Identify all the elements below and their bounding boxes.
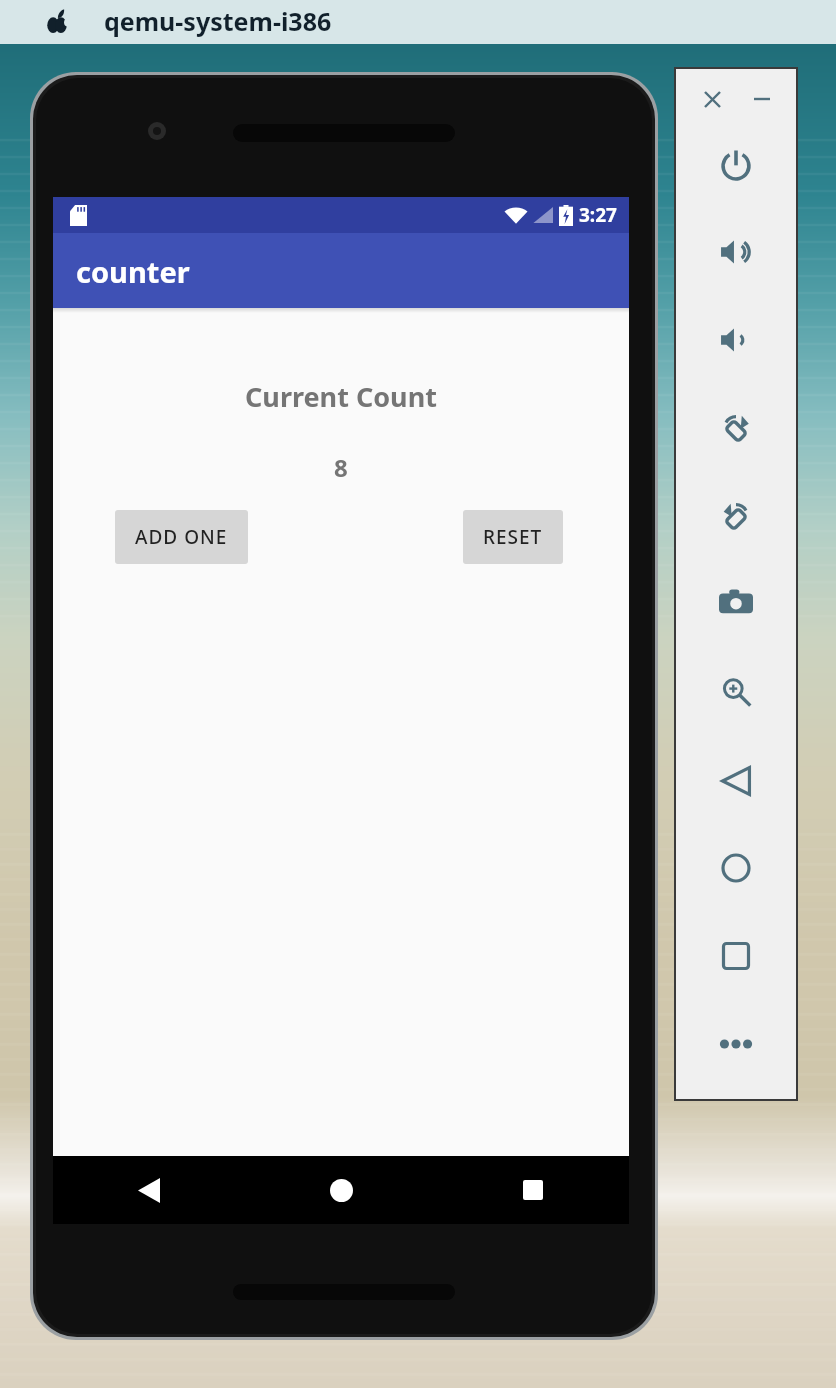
button[interactable]: Back: [53, 1156, 245, 1224]
button[interactable]: Rotate right: [706, 486, 766, 546]
button[interactable]: Minimize: [749, 86, 775, 112]
staticText: RESET: [483, 524, 543, 550]
button[interactable]: Recent apps: [706, 926, 766, 986]
staticText: ADD ONE: [135, 524, 228, 550]
button[interactable]: Volume down: [706, 310, 766, 370]
button[interactable]: Volume up: [706, 222, 766, 282]
staticText: 8: [334, 451, 348, 484]
button[interactable]: Take screenshot: [706, 573, 766, 633]
button[interactable]: Rotate left: [706, 398, 766, 458]
button[interactable]: Power: [706, 134, 766, 194]
button[interactable]: More: [706, 1014, 766, 1074]
button[interactable]: Zoom: [706, 662, 766, 722]
staticText: 3:27: [579, 202, 617, 228]
button[interactable]: Back: [706, 751, 766, 811]
button[interactable]: Close: [699, 86, 725, 112]
button[interactable]: Recent apps: [437, 1156, 629, 1224]
staticText: Current Count: [245, 378, 437, 415]
button[interactable]: ADD ONE: [115, 510, 248, 564]
button[interactable]: RESET: [463, 510, 563, 564]
button[interactable]: Home: [706, 838, 766, 898]
button[interactable]: Home: [245, 1156, 437, 1224]
staticText: counter: [76, 252, 190, 291]
staticText: qemu-system-i386: [104, 4, 332, 38]
